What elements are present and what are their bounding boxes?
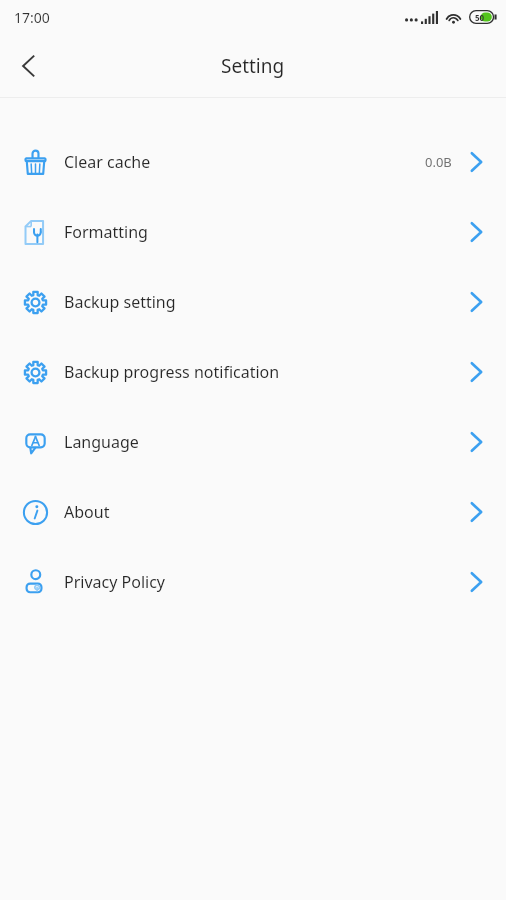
staticText: Backup setting [64,291,470,313]
button[interactable]: About [0,477,506,547]
staticText: 0.0B [425,153,452,171]
staticText: Formatting [64,221,470,243]
staticText: 17:00 [14,8,50,27]
staticText: Language [64,431,470,453]
staticText: About [64,501,470,523]
button[interactable]: Formatting [0,197,506,267]
staticText: 50 [475,12,485,23]
button[interactable]: Privacy Policy [0,547,506,617]
staticText: Setting [221,53,285,79]
staticText: Privacy Policy [64,571,470,593]
button[interactable]: Backup progress notification [0,337,506,407]
button[interactable]: Clear cache [0,127,506,197]
staticText: Clear cache [64,151,425,173]
button[interactable]: Back [0,38,56,94]
button[interactable]: Language [0,407,506,477]
button[interactable]: Backup setting [0,267,506,337]
staticText: Backup progress notification [64,361,470,383]
